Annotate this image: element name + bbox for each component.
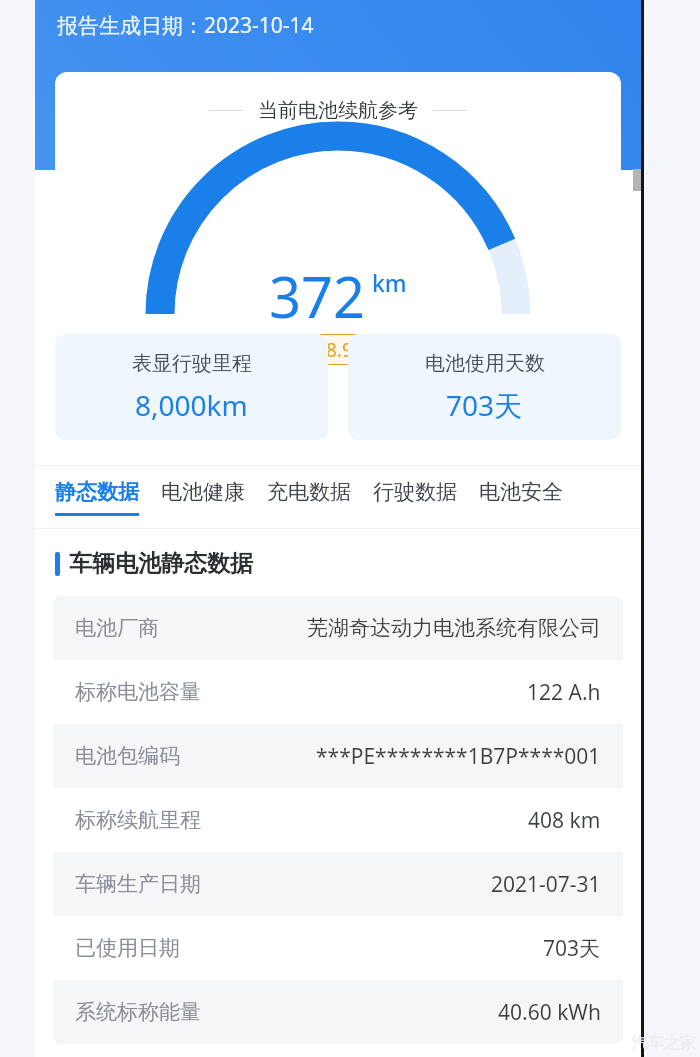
staticText: 122 A.h <box>527 678 601 707</box>
button[interactable]: 标称电池容量 <box>53 660 623 724</box>
button[interactable]: 充电数据 <box>267 465 373 529</box>
staticText: 标称续航里程 <box>75 807 201 833</box>
staticText: 电池健康 <box>161 479 245 505</box>
button[interactable]: 静态数据 <box>55 465 161 529</box>
staticText: 电池厂商 <box>75 615 159 641</box>
staticText: 静态数据 <box>55 479 139 505</box>
staticText: 703天 <box>446 386 523 424</box>
button[interactable]: 电池安全 <box>479 465 585 529</box>
button[interactable]: 系统标称能量 <box>53 980 623 1044</box>
button[interactable]: 电池使用天数 <box>348 334 621 440</box>
staticText: km <box>372 267 407 298</box>
button[interactable]: 行驶数据 <box>373 465 479 529</box>
staticText: 车辆生产日期 <box>75 871 201 897</box>
staticText: 系统标称能量 <box>75 999 201 1025</box>
staticText: 电池安全 <box>479 479 563 505</box>
staticText: 标称电池容量 <box>75 679 201 705</box>
button[interactable]: 电池健康 <box>161 465 267 529</box>
staticText: 行驶数据 <box>373 479 457 505</box>
button[interactable]: 表显行驶里程 <box>55 334 328 440</box>
staticText: 40.60 kWh <box>498 998 601 1027</box>
button[interactable]: 标称续航里程 <box>53 788 623 852</box>
staticText: 8,000km <box>135 386 248 424</box>
staticText: 2021-07-31 <box>491 870 601 899</box>
button[interactable]: 电池厂商 <box>53 596 623 660</box>
staticText: 报告生成日期：2023-10-14 <box>57 11 314 40</box>
staticText: 408 km <box>528 806 601 835</box>
staticText: 汽车之家 <box>632 1033 696 1053</box>
staticText: 当前电池续航参考 <box>258 98 418 123</box>
staticText: 已使用日期 <box>75 935 180 961</box>
staticText: 电池包编码 <box>75 743 180 769</box>
staticText: 车辆电池静态数据 <box>69 549 253 578</box>
button[interactable]: 车辆生产日期 <box>53 852 623 916</box>
button[interactable]: 电池包编码 <box>53 724 623 788</box>
staticText: 芜湖奇达动力电池系统有限公司 <box>307 615 601 641</box>
staticText: 电池使用天数 <box>425 351 545 376</box>
staticText: 8.9% <box>326 337 369 363</box>
staticText: 372 <box>269 258 366 334</box>
staticText: 703天 <box>543 934 601 963</box>
button[interactable]: 已使用日期 <box>53 916 623 980</box>
staticText: 充电数据 <box>267 479 351 505</box>
button[interactable]: ↓ <box>292 334 385 365</box>
staticText: 表显行驶里程 <box>132 351 252 376</box>
staticText: ***PE********1B7P****001 <box>316 742 601 771</box>
